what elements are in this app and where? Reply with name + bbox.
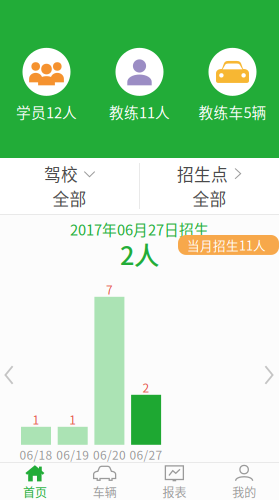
staticText: 2人 [120, 240, 159, 268]
button[interactable]: 教练车5辆 [186, 48, 279, 120]
button[interactable]: 我的 [209, 464, 279, 499]
button[interactable]: 驾校 [0, 158, 139, 214]
staticText: 首页 [23, 485, 47, 499]
staticText: 报表 [162, 485, 186, 499]
staticText: 1 [32, 413, 39, 426]
staticText: 驾校 [44, 165, 78, 183]
staticText: 2017年06月27日招生 [70, 221, 209, 237]
staticText: 06/19 [56, 448, 89, 461]
staticText: 车辆 [93, 485, 117, 499]
staticText: 教练11人 [109, 104, 170, 120]
button[interactable]: 当月招生11人 [178, 235, 279, 255]
staticText: 2 [143, 381, 150, 394]
button[interactable]: 车辆 [70, 464, 140, 499]
button[interactable]: 报表 [139, 464, 209, 499]
button[interactable]: 首页 [0, 464, 70, 499]
staticText: 1 [69, 413, 76, 426]
staticText: 我的 [232, 485, 256, 499]
staticText: 学员12人 [16, 104, 77, 120]
button[interactable]: 招生点 [140, 158, 279, 214]
button[interactable]: 学员12人 [0, 48, 93, 120]
button[interactable]: 教练11人 [93, 48, 186, 120]
staticText: 7 [106, 283, 113, 296]
staticText: 招生点 [177, 165, 228, 183]
staticText: 教练车5辆 [198, 104, 266, 120]
staticText: 06/18 [19, 448, 52, 461]
staticText: 06/27 [130, 448, 163, 461]
staticText: 全部 [52, 189, 86, 207]
button[interactable]: 下一页 [264, 365, 274, 385]
staticText: 当月招生11人 [187, 238, 266, 252]
button[interactable]: 上一页 [4, 365, 14, 385]
staticText: 06/20 [93, 448, 126, 461]
staticText: 全部 [192, 189, 226, 207]
